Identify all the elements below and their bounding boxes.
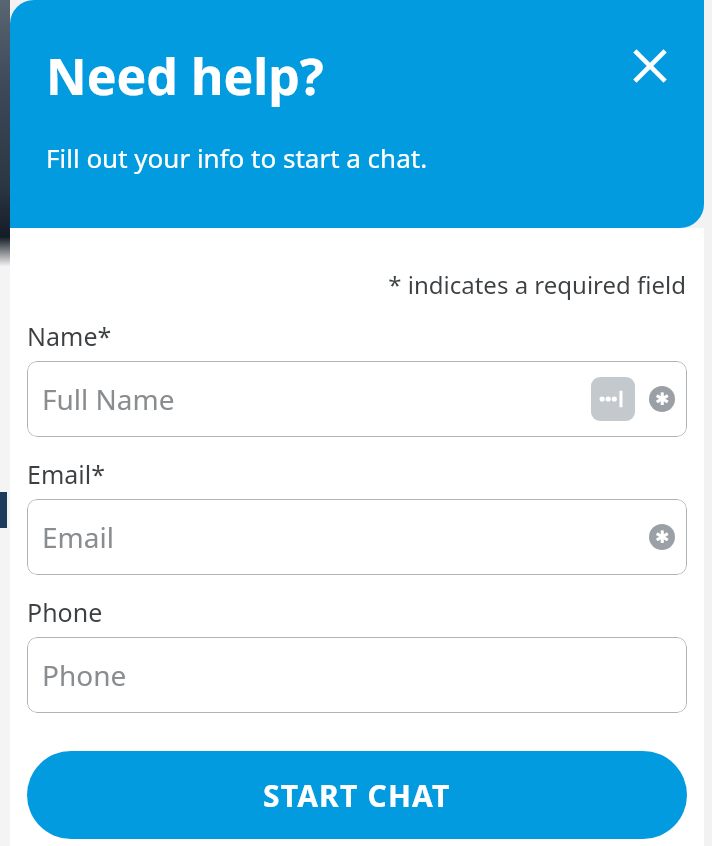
staticText: ✱ <box>655 389 670 409</box>
staticText: ✱ <box>655 527 670 547</box>
button[interactable]: Autofill <box>591 377 635 421</box>
staticText: * indicates a required field <box>10 268 686 301</box>
staticText: Email* <box>27 457 105 491</box>
button[interactable]: Phone <box>27 637 687 713</box>
button[interactable]: Close <box>616 32 684 100</box>
staticText: Phone <box>27 595 103 629</box>
staticText: Name* <box>27 319 112 353</box>
button[interactable]: START CHAT <box>27 751 687 839</box>
staticText: Fill out your info to start a chat. <box>46 140 428 175</box>
button[interactable]: Email <box>27 499 687 575</box>
staticText: Phone <box>42 656 127 694</box>
staticText: Email <box>42 518 114 556</box>
staticText: START CHAT <box>263 775 451 816</box>
button[interactable]: Full Name <box>27 361 687 437</box>
staticText: Need help? <box>46 42 324 110</box>
staticText: Full Name <box>42 380 175 418</box>
